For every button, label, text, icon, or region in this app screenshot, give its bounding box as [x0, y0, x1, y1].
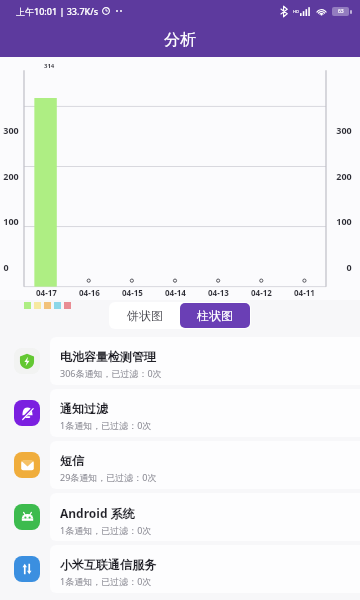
button[interactable]: 电池容量检测管理 [0, 337, 360, 385]
staticText: 1条通知，已过滤：0次 [60, 419, 152, 431]
staticText: 300 [3, 124, 19, 136]
staticText: 饼状图 [127, 308, 163, 323]
staticText: 0 [3, 261, 9, 273]
staticText: 04-17 [36, 287, 57, 298]
button[interactable]: 饼状图 [110, 303, 180, 328]
staticText: 0 [346, 261, 352, 273]
button[interactable]: 通知过滤 [0, 389, 360, 437]
button[interactable]: 柱状图 [180, 303, 250, 328]
staticText: 314 [44, 62, 55, 70]
staticText: Android 系统 [60, 505, 135, 521]
staticText: 小米互联通信服务 [60, 557, 156, 572]
staticText: 上午10:01 | 33.7K/s [16, 5, 99, 17]
staticText: 电池容量检测管理 [60, 349, 156, 364]
staticText: 300 [336, 124, 352, 136]
staticText: 通知过滤 [60, 401, 108, 416]
staticText: 04-14 [165, 287, 186, 298]
staticText: 04-13 [208, 287, 229, 298]
staticText: 1条通知，已过滤：0次 [60, 575, 152, 587]
staticText: 04-12 [251, 287, 272, 298]
button[interactable]: 小米互联通信服务 [0, 545, 360, 593]
staticText: 100 [3, 215, 19, 227]
staticText: 63 [338, 8, 344, 15]
staticText: 306条通知，已过滤：0次 [60, 367, 162, 379]
staticText: 1条通知，已过滤：0次 [60, 524, 152, 536]
staticText: 200 [336, 170, 352, 182]
staticText: 04-16 [79, 287, 100, 298]
staticText: 柱状图 [197, 308, 233, 323]
staticText: 04-15 [122, 287, 143, 298]
staticText: 200 [3, 170, 19, 182]
button[interactable]: 短信 [0, 441, 360, 489]
button[interactable]: Android 系统 [0, 493, 360, 541]
staticText: 100 [336, 215, 352, 227]
staticText: 分析 [164, 30, 196, 50]
staticText: 29条通知，已过滤：0次 [60, 471, 157, 483]
staticText: 短信 [60, 453, 84, 468]
staticText: HD [293, 9, 299, 14]
staticText: 04-11 [294, 287, 315, 298]
